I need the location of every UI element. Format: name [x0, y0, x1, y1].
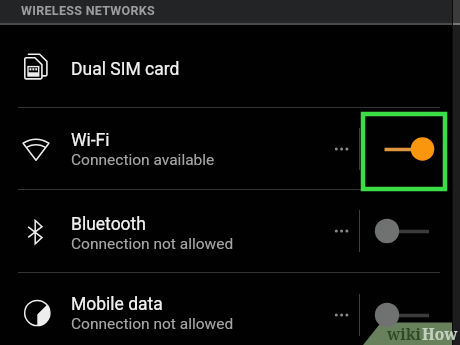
- button[interactable]: Wi-Fi: [0, 108, 460, 189]
- button[interactable]: Dual SIM card: [0, 25, 460, 107]
- staticText: Mobile data: [71, 294, 163, 315]
- staticText: Connection not allowed: [71, 315, 234, 333]
- staticText: Wi-Fi: [71, 130, 110, 151]
- staticText: Bluetooth: [71, 214, 146, 235]
- staticText: Dual SIM card: [71, 59, 180, 80]
- button[interactable]: Wi-Fi switch: [368, 129, 446, 169]
- button[interactable]: Bluetooth switch: [368, 211, 446, 251]
- button[interactable]: Mobile data: [0, 273, 460, 345]
- staticText: wiki: [387, 323, 422, 344]
- button[interactable]: Bluetooth: [0, 190, 460, 272]
- staticText: Connection not allowed: [71, 235, 234, 253]
- button[interactable]: Mobile data switch: [368, 295, 446, 335]
- staticText: WIRELESS NETWORKS: [21, 3, 156, 18]
- staticText: How: [422, 323, 458, 344]
- staticText: Connection available: [71, 151, 215, 169]
